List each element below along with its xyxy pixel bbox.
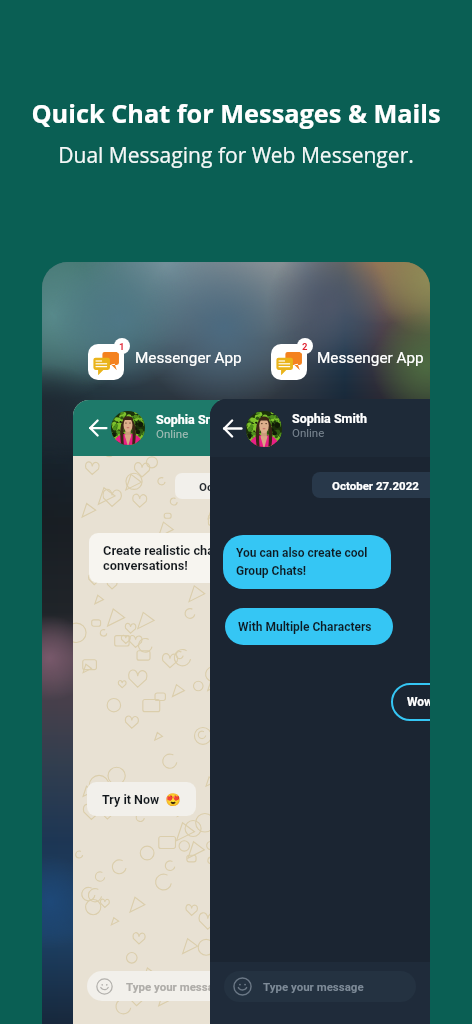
staticText: 1 — [119, 341, 125, 352]
button[interactable]: Back — [223, 419, 242, 438]
staticText: October 27.2022 — [332, 479, 419, 492]
staticText: With Multiple Characters — [238, 620, 372, 634]
staticText: Quick Chat for Messages & Mails — [31, 96, 441, 130]
staticText: Type your message — [263, 980, 364, 993]
staticText: Online — [292, 426, 325, 439]
staticText: Try it Now 😍 — [102, 792, 181, 807]
staticText: Messenger App — [317, 349, 424, 367]
staticText: Type your message — [126, 980, 227, 993]
staticText: Sophia Smith — [156, 412, 231, 427]
staticText: October 27.2022 — [199, 480, 233, 493]
staticText: Sophia Smith — [292, 411, 367, 426]
button[interactable]: Create realistic chat conversations! — [89, 533, 233, 583]
staticText: Create realistic chat conversations! — [103, 543, 219, 573]
staticText: Wow that's great! — [407, 695, 430, 709]
staticText: Messenger App — [135, 349, 242, 367]
staticText: 2 — [302, 341, 308, 352]
button[interactable]: Try it Now 😍 — [87, 782, 196, 816]
button[interactable]: Type your message — [87, 971, 233, 1001]
staticText: You can also create cool Group Chats! — [236, 546, 368, 578]
button[interactable]: Messenger App — [271, 344, 307, 380]
staticText: Dual Messaging for Web Messenger. — [58, 141, 414, 170]
button[interactable]: Type your message — [224, 971, 416, 1002]
button[interactable]: You can also create cool Group Chats! — [223, 535, 391, 589]
staticText: Online — [156, 427, 189, 440]
button[interactable]: With Multiple Characters — [225, 608, 393, 645]
button[interactable]: Back — [73, 400, 233, 456]
button[interactable]: Messenger App — [88, 344, 124, 380]
button[interactable]: Back — [210, 399, 430, 457]
button[interactable]: Back — [89, 419, 107, 437]
